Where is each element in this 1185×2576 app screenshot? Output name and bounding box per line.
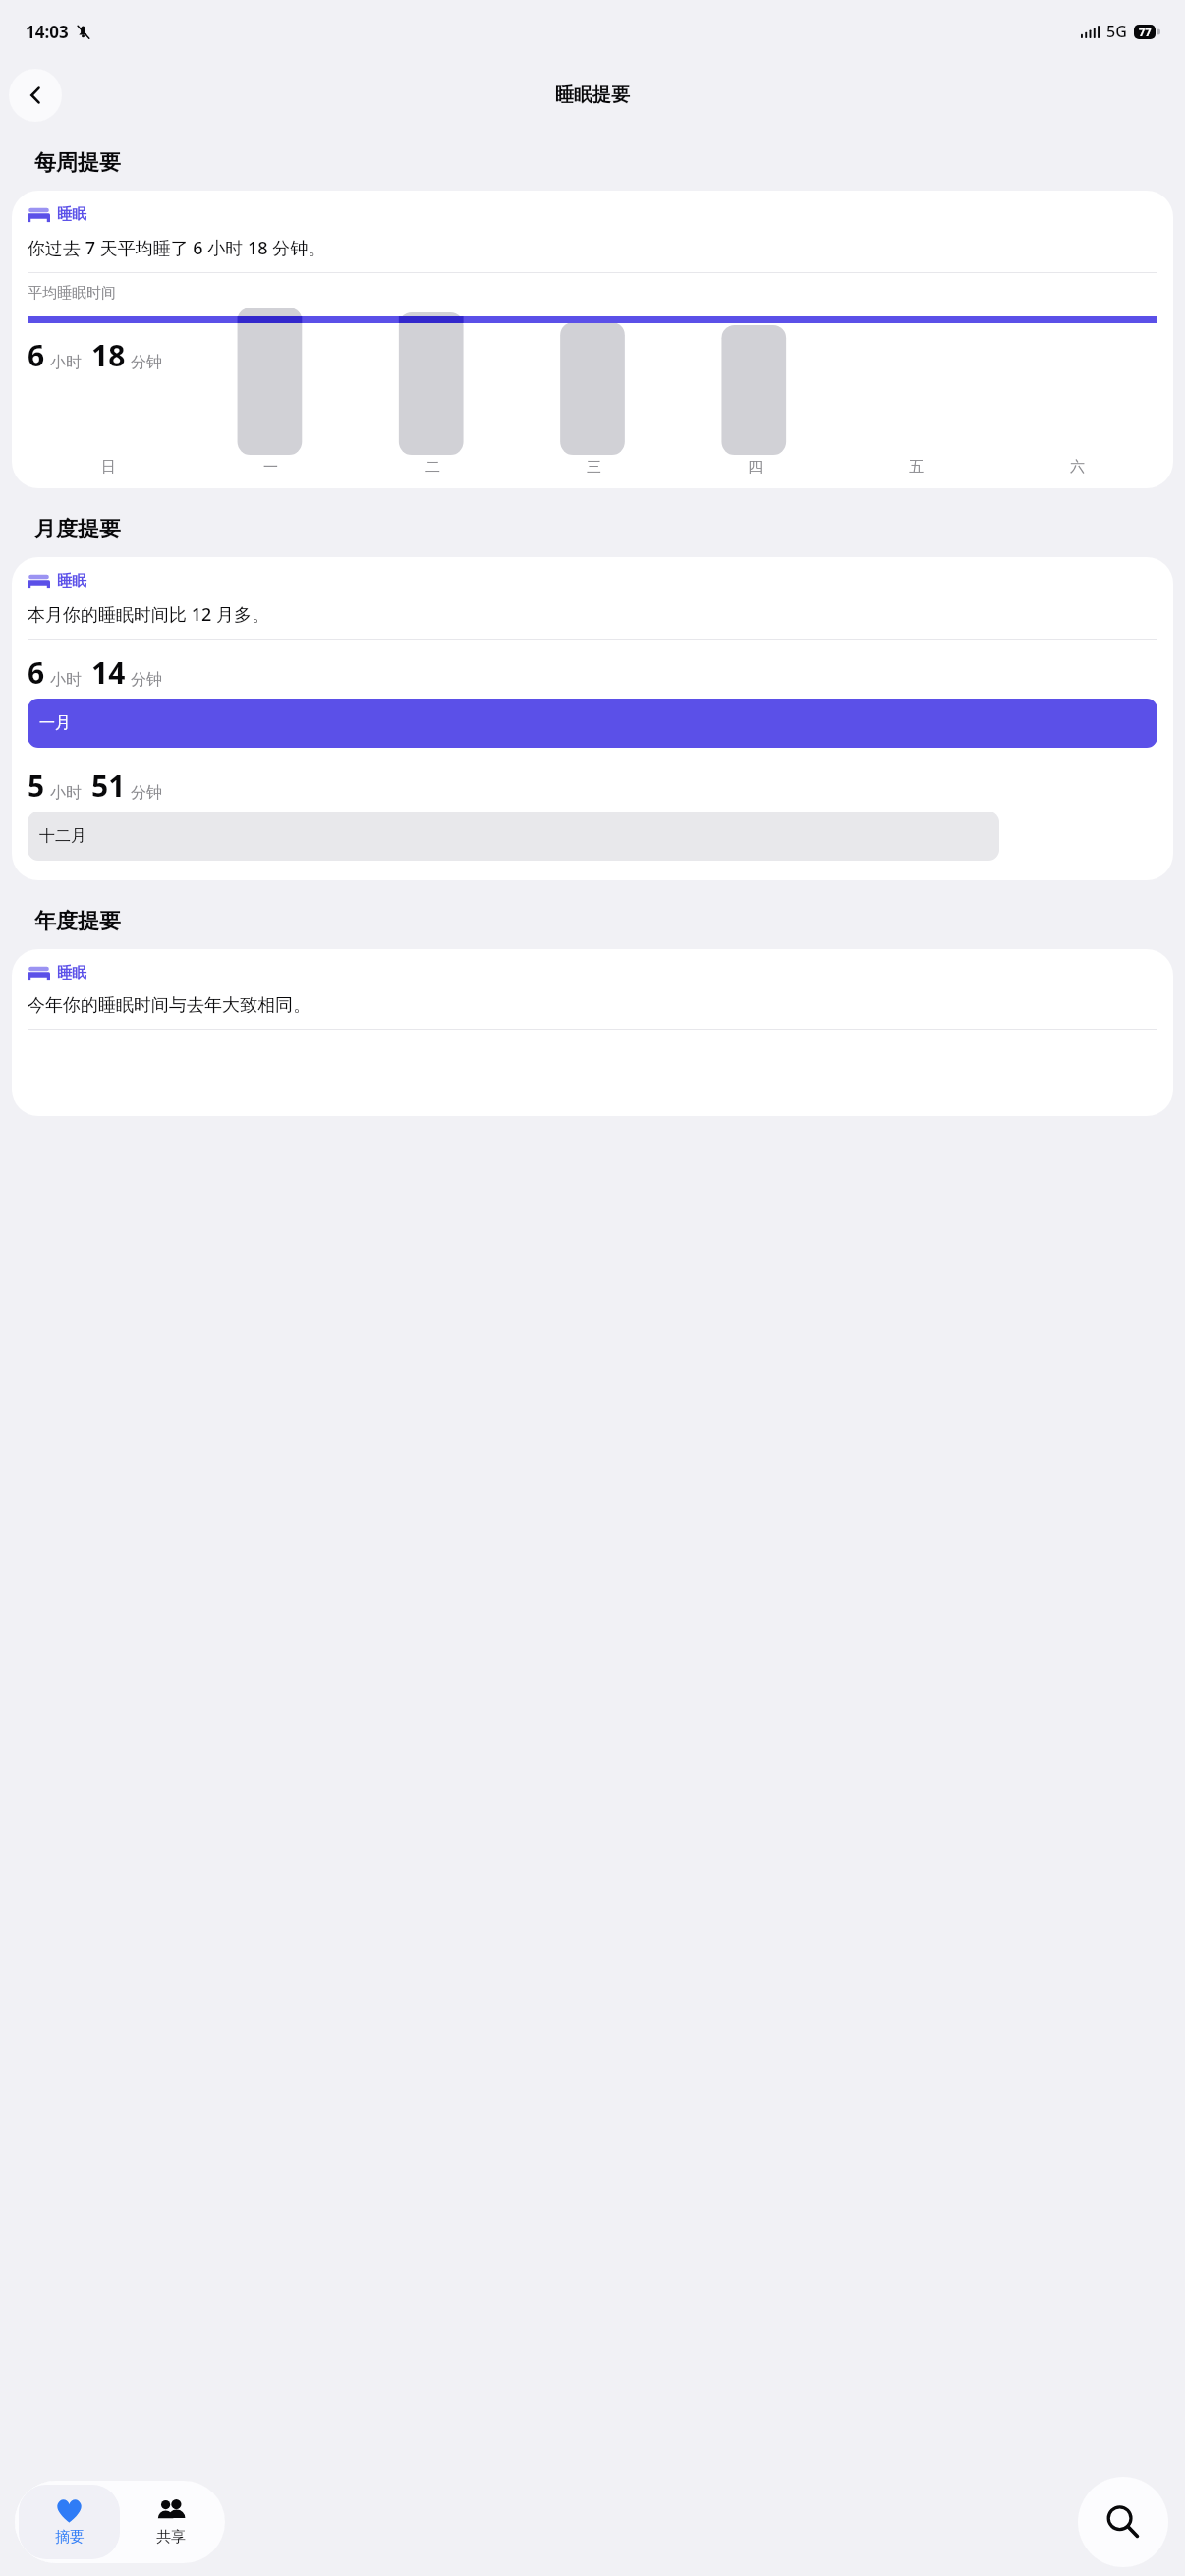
- button[interactable]: 摘要: [19, 2485, 120, 2559]
- staticText: 小时: [50, 353, 82, 372]
- staticText: 月度提要: [34, 516, 121, 543]
- staticText: 每周提要: [34, 149, 121, 177]
- staticText: 睡眠: [57, 572, 86, 590]
- staticText: 一月: [39, 713, 71, 733]
- button[interactable]: 搜索: [1078, 2477, 1168, 2567]
- staticText: 今年你的睡眠时间与去年大致相同。: [28, 994, 310, 1017]
- staticText: 睡眠: [57, 964, 86, 982]
- button[interactable]: 共享: [120, 2485, 221, 2559]
- staticText: 本月你的睡眠时间比 12 月多。: [28, 602, 269, 627]
- staticText: 18: [91, 335, 126, 375]
- staticText: 六: [1070, 458, 1085, 476]
- staticText: 小时: [50, 670, 82, 690]
- button[interactable]: 睡眠: [12, 191, 1173, 488]
- staticText: 5: [28, 765, 45, 806]
- staticText: 6: [28, 652, 45, 693]
- staticText: 6: [28, 335, 45, 375]
- staticText: 77: [1139, 25, 1152, 39]
- staticText: 分钟: [131, 353, 162, 372]
- staticText: 平均睡眠时间: [28, 284, 116, 303]
- staticText: 你过去 7 天平均睡了 6 小时 18 分钟。: [28, 236, 326, 260]
- staticText: 五: [909, 458, 924, 476]
- staticText: 睡眠提要: [555, 84, 630, 107]
- staticText: 二: [425, 458, 440, 476]
- button[interactable]: 睡眠: [12, 557, 1173, 880]
- staticText: 共享: [156, 2528, 186, 2547]
- staticText: 摘要: [55, 2528, 85, 2547]
- staticText: 一: [263, 458, 278, 476]
- staticText: 睡眠: [57, 205, 86, 224]
- button[interactable]: 睡眠: [12, 949, 1173, 1116]
- staticText: 日: [101, 458, 116, 476]
- staticText: 年度提要: [34, 908, 121, 935]
- staticText: 小时: [50, 783, 82, 803]
- staticText: 51: [91, 765, 126, 806]
- staticText: 三: [587, 458, 601, 476]
- staticText: 5G: [1106, 21, 1127, 42]
- staticText: 分钟: [131, 783, 162, 803]
- button[interactable]: 返回: [9, 69, 62, 122]
- staticText: 四: [748, 458, 762, 476]
- staticText: 14:03: [26, 21, 69, 43]
- staticText: 十二月: [39, 826, 86, 846]
- staticText: 14: [91, 652, 126, 693]
- staticText: 分钟: [131, 670, 162, 690]
